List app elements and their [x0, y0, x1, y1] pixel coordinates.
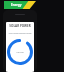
- staticText: 4.8 kWh: [16, 51, 24, 54]
- button[interactable]: Energy: [4, 1, 36, 9]
- button[interactable]: SOLAR POWER: [6, 24, 34, 28]
- staticText: Energy: [11, 3, 22, 7]
- staticText: Your home energy today: [8, 32, 32, 35]
- button[interactable]: Energy progress: [7, 39, 33, 65]
- staticText: SOLAR POWER: [9, 24, 31, 28]
